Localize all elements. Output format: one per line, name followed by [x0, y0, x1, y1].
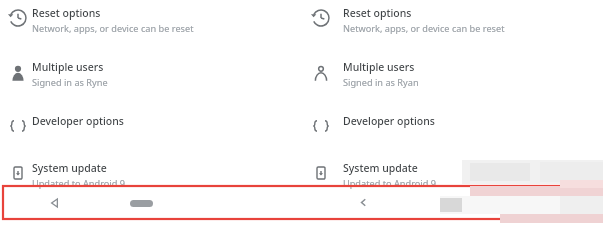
staticText: Signed in as Ryan [343, 76, 419, 89]
staticText: Updated to Android 9 [343, 177, 437, 190]
button[interactable]: Reset options [305, 6, 603, 60]
button[interactable]: Back [358, 197, 369, 208]
button[interactable]: Multiple users [305, 60, 603, 114]
button[interactable]: Developer options [305, 114, 603, 161]
staticText: Signed in as Ryne [32, 76, 108, 89]
staticText: Developer options [32, 114, 124, 128]
button[interactable]: Reset options [0, 6, 295, 60]
button[interactable]: Multiple users [0, 60, 295, 114]
staticText: Multiple users [32, 60, 104, 74]
staticText: Reset options [343, 6, 412, 20]
staticText: System update [343, 161, 418, 175]
staticText: Multiple users [343, 60, 415, 74]
staticText: Network, apps, or device can be reset [32, 22, 194, 35]
staticText: Reset options [32, 6, 101, 20]
staticText: Developer options [343, 114, 435, 128]
button[interactable]: System update [305, 161, 603, 201]
button[interactable]: Back [48, 197, 60, 209]
button[interactable]: Home [130, 200, 153, 207]
staticText: Network, apps, or device can be reset [343, 22, 505, 35]
button[interactable]: Developer options [0, 114, 295, 161]
staticText: Updated to Android 9 [32, 177, 126, 190]
staticText: System update [32, 161, 107, 175]
button[interactable]: System update [0, 161, 295, 201]
